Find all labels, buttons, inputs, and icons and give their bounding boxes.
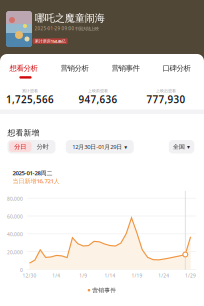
staticText: 口碑分析 — [162, 64, 190, 73]
staticText: 947,636 — [78, 93, 117, 106]
staticText: 上映后想看 — [156, 88, 176, 93]
staticText: 累计想看 — [22, 88, 38, 93]
staticText: 2025-01-29 09:00中国大陆上映 — [34, 25, 98, 31]
button[interactable]: 累计票房154.46亿 — [33, 38, 68, 44]
staticText: 1/9 — [79, 272, 87, 279]
staticText: 40,000 — [7, 231, 23, 238]
staticText: 分日 — [14, 143, 26, 151]
button[interactable]: 12月30日-01月29日 ▾ — [66, 140, 134, 153]
staticText: 20,000 — [7, 249, 23, 255]
staticText: 哪吒之魔童闹海 — [35, 12, 105, 25]
staticText: 1/29 — [185, 272, 196, 279]
staticText: 1/19 — [131, 272, 142, 279]
staticText: 营销分析 — [60, 64, 88, 73]
staticText: 营销事件 — [111, 64, 139, 73]
staticText: 777,930 — [146, 93, 185, 106]
button[interactable]: 营销事件 — [100, 58, 151, 80]
button[interactable]: 营销分析 — [49, 58, 100, 80]
staticText: 分时 — [37, 143, 49, 151]
button[interactable]: 想看分析 — [0, 58, 49, 80]
staticText: 1,725,566 — [6, 93, 54, 106]
staticText: 80,000 — [7, 196, 23, 202]
staticText: 想看新增 — [7, 128, 39, 138]
staticText: 12月30日-01月29日 ▾ — [72, 143, 127, 151]
button[interactable]: 全国 ▾ — [169, 140, 194, 153]
staticText: 1/4 — [52, 272, 60, 279]
staticText: 2025-01-28周二 — [12, 169, 52, 177]
button[interactable]: 分日 — [9, 141, 31, 152]
staticText: 0 — [20, 267, 23, 273]
staticText: 1/24 — [158, 272, 169, 279]
button[interactable]: 分时 — [31, 141, 54, 152]
staticText: 12/30 — [22, 272, 36, 279]
button[interactable]: 口碑分析 — [151, 58, 202, 80]
staticText: 营销事件 — [92, 286, 116, 294]
staticText: 想看分析 — [9, 64, 37, 73]
staticText: 60,000 — [7, 213, 23, 220]
staticText: 累计票房154.46亿 — [35, 38, 66, 44]
staticText: 当日新增16,721人 — [12, 177, 59, 185]
staticText: 1/14 — [104, 272, 115, 279]
staticText: 全国 ▾ — [173, 143, 190, 150]
staticText: 上映前想看 — [88, 88, 108, 93]
